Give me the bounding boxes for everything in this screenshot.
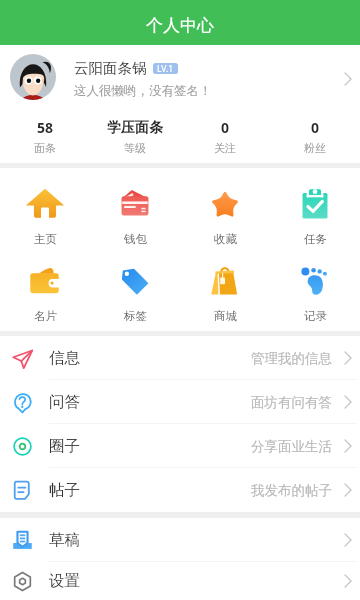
button[interactable]: 帖子 [0,468,360,512]
staticText: 问答 [49,392,80,412]
staticText: 学压面条 [107,119,163,137]
button[interactable]: 名片 [0,265,90,323]
staticText: 0 [221,118,230,137]
staticText: 设置 [49,571,80,591]
button[interactable]: 草稿 [0,518,360,562]
staticText: 我发布的帖子 [251,482,332,499]
staticText: 钱包 [124,232,147,246]
staticText: 任务 [304,232,327,246]
staticText: 云阳面条锅 [74,59,147,77]
button[interactable]: 信息 [0,336,360,380]
staticText: 帖子 [49,480,80,500]
staticText: 面条 [34,141,56,155]
button[interactable]: 商城 [180,265,270,323]
button[interactable]: 钱包 [90,188,180,246]
staticText: LV.1 [157,63,174,74]
button[interactable]: 58 [0,119,90,156]
staticText: 个人中心 [146,15,214,36]
button[interactable]: 圈子 [0,424,360,468]
button[interactable]: 云阳面条锅 [0,45,360,112]
button[interactable]: 主页 [0,188,90,246]
button[interactable]: 0 [270,119,360,156]
button[interactable]: 任务 [270,188,360,246]
staticText: 粉丝 [304,141,326,155]
staticText: 面坊有问有答 [251,394,332,411]
staticText: 圈子 [49,436,80,456]
staticText: 标签 [124,309,147,323]
button[interactable]: 学压面条 [90,120,180,156]
staticText: 等级 [124,141,146,155]
button[interactable]: 收藏 [180,188,270,246]
staticText: 名片 [34,309,57,323]
staticText: 关注 [214,141,236,155]
staticText: 记录 [304,309,327,323]
staticText: 主页 [34,232,57,246]
button[interactable]: 设置 [0,562,360,600]
button[interactable]: 问答 [0,380,360,424]
staticText: 分享面业生活 [251,438,332,455]
staticText: 这人很懒哟，没有签名！ [74,83,212,99]
staticText: 收藏 [214,232,237,246]
staticText: 管理我的信息 [251,350,332,367]
button[interactable]: 标签 [90,265,180,323]
staticText: 信息 [49,348,80,368]
button[interactable]: 0 [180,119,270,156]
button[interactable]: 记录 [270,265,360,323]
staticText: 58 [37,118,54,137]
staticText: 草稿 [49,530,80,550]
staticText: 商城 [214,309,237,323]
staticText: 0 [311,118,320,137]
